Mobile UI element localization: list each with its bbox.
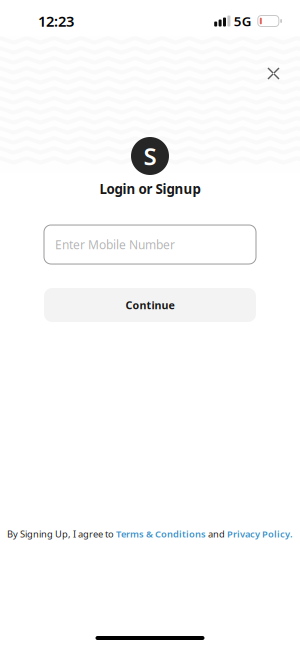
button[interactable]: Terms & Conditions (116, 528, 206, 540)
button[interactable]: Privacy Policy. (227, 528, 293, 540)
button[interactable]: Close (257, 57, 290, 90)
staticText: and (206, 528, 227, 540)
button[interactable]: Enter Mobile Number (0, 225, 300, 264)
staticText: Login or Signup (99, 180, 200, 198)
staticText: Enter Mobile Number (55, 236, 175, 252)
staticText: By Signing Up, I agree to (7, 528, 116, 540)
staticText: S (143, 140, 156, 172)
staticText: Privacy Policy. (227, 528, 293, 540)
button[interactable]: Continue (0, 288, 300, 322)
staticText: 12:23 (38, 11, 74, 31)
staticText: Terms & Conditions (116, 528, 206, 540)
staticText: 5G (234, 12, 252, 30)
staticText: Continue (125, 298, 174, 312)
